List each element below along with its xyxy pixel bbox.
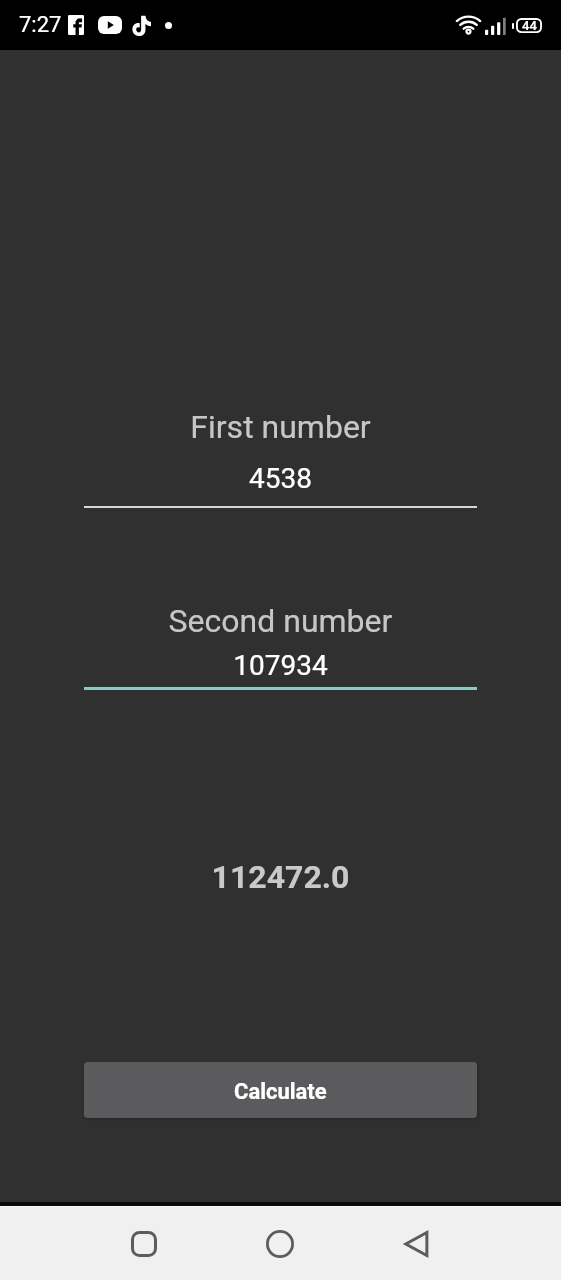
button[interactable]: Home	[250, 1214, 310, 1274]
button[interactable]: Back	[387, 1214, 447, 1274]
button[interactable]: Second number input field	[84, 602, 477, 690]
button[interactable]: Calculate	[84, 1062, 477, 1118]
staticText: 107934	[84, 649, 477, 682]
button[interactable]: First number input field	[84, 408, 477, 508]
staticText: 44	[522, 18, 537, 33]
staticText: Second number	[84, 602, 477, 640]
staticText: 112472.0	[0, 858, 561, 896]
staticText: 7:27	[19, 12, 62, 38]
button[interactable]: Recent apps	[114, 1214, 174, 1274]
staticText: 4538	[84, 462, 477, 495]
staticText: Calculate	[234, 1079, 327, 1105]
staticText: First number	[84, 408, 477, 446]
